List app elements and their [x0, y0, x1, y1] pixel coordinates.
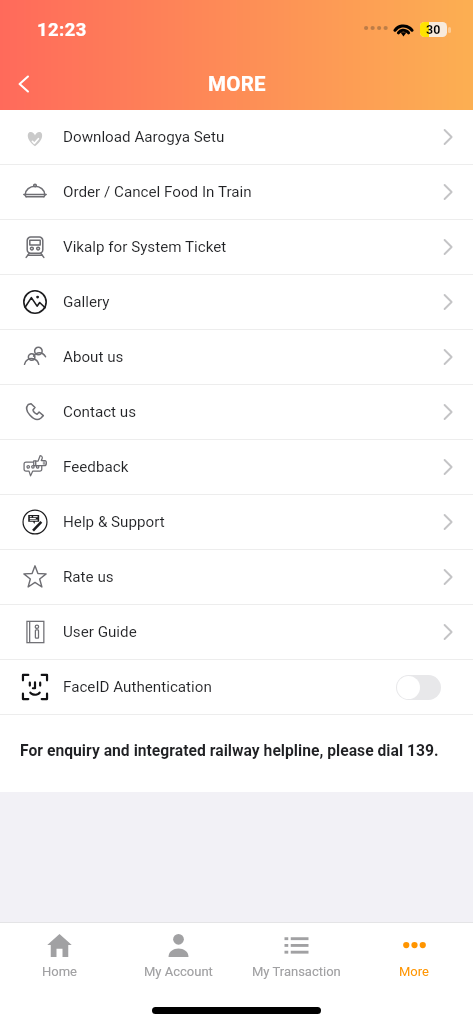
staticText: Feedback	[63, 458, 129, 476]
button[interactable]: Feedback	[0, 440, 473, 494]
staticText: 12:23	[37, 19, 87, 41]
staticText: My Transaction	[252, 964, 341, 979]
staticText: Contact us	[63, 403, 137, 421]
button[interactable]: Vikalp for System Ticket	[0, 220, 473, 274]
button[interactable]: More	[355, 922, 473, 979]
button[interactable]: My Account	[119, 922, 237, 979]
staticText: Help & Support	[63, 513, 165, 531]
staticText: Vikalp for System Ticket	[63, 238, 227, 256]
button[interactable]: Contact us	[0, 385, 473, 439]
staticText: User Guide	[63, 623, 137, 641]
button[interactable]: Download Aarogya Setu	[0, 110, 473, 164]
staticText: My Account	[144, 964, 213, 979]
button[interactable]: Gallery	[0, 275, 473, 329]
button[interactable]: Order / Cancel Food In Train	[0, 165, 473, 219]
button[interactable]: User Guide	[0, 605, 473, 659]
staticText: More	[399, 964, 429, 979]
staticText: Download Aarogya Setu	[63, 128, 225, 146]
staticText: Order / Cancel Food In Train	[63, 183, 252, 201]
staticText: Home	[42, 964, 77, 979]
button[interactable]: My Transaction	[237, 922, 355, 979]
staticText: FaceID Authentication	[63, 678, 212, 696]
staticText: Rate us	[63, 568, 114, 586]
staticText: MORE	[208, 72, 266, 96]
staticText: Gallery	[63, 293, 110, 311]
button[interactable]: Rate us	[0, 550, 473, 604]
button[interactable]: FaceID Authentication	[0, 660, 473, 714]
button[interactable]: Help & Support	[0, 495, 473, 549]
button[interactable]: Home	[0, 922, 119, 979]
button[interactable]: Back	[0, 60, 48, 108]
staticText: 30	[426, 22, 441, 37]
staticText: For enquiry and integrated railway helpl…	[20, 741, 439, 759]
button[interactable]: About us	[0, 330, 473, 384]
staticText: About us	[63, 348, 124, 366]
button[interactable]: FaceID Authentication toggle	[396, 675, 441, 700]
